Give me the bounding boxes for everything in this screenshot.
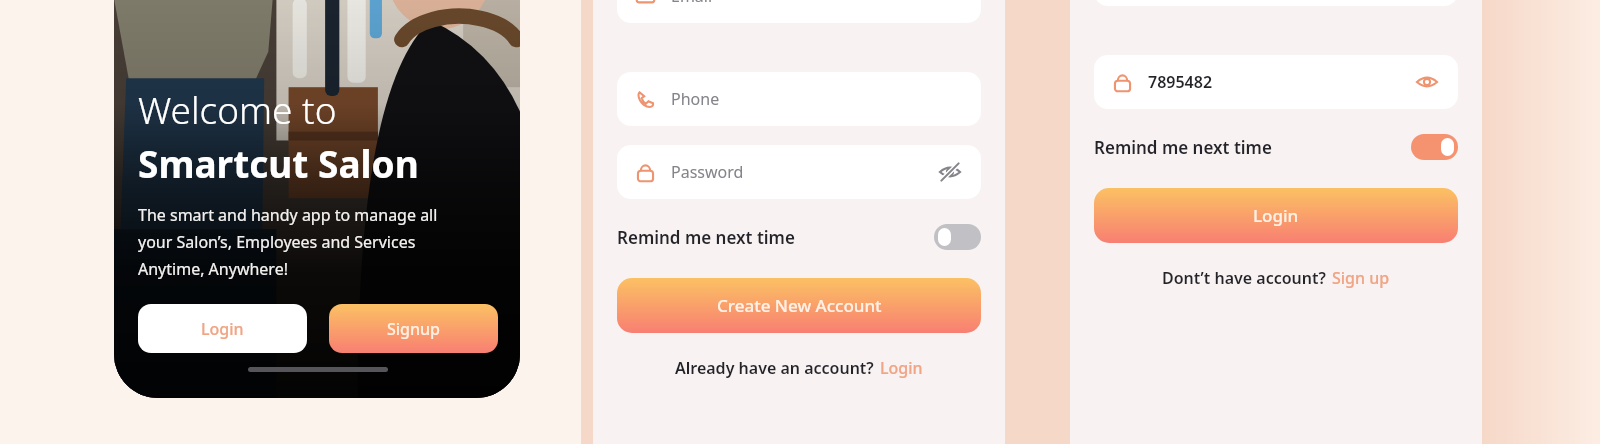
staticText: Remind me next time (617, 226, 795, 249)
button[interactable]: Password (617, 145, 981, 199)
staticText: Smartcut Salon (138, 138, 419, 188)
staticText: Dont’t have account? (1162, 267, 1326, 289)
button[interactable]: Remind me next time toggle (1411, 134, 1458, 160)
staticText: Login (201, 318, 244, 340)
button[interactable]: Phone (617, 72, 981, 126)
staticText: Already have an account? (675, 357, 874, 379)
staticText: Login (1253, 204, 1299, 227)
button[interactable]: Login (138, 304, 307, 353)
staticText: Signup (387, 318, 441, 340)
staticText: Login (880, 357, 923, 379)
staticText: Sign up (1332, 267, 1390, 289)
button[interactable]: Signup (329, 304, 498, 353)
staticText: Remind me next time (1094, 136, 1272, 159)
button[interactable]: 7895482 (1094, 55, 1458, 109)
button[interactable]: Email (617, 0, 981, 23)
button[interactable]: Show password (937, 159, 963, 185)
staticText: Phone (671, 88, 720, 110)
button[interactable]: Create New Account (617, 278, 981, 333)
staticText: Email (671, 0, 713, 7)
staticText: Welcome to (138, 84, 337, 134)
staticText: 7895482 (1148, 71, 1213, 93)
button[interactable]: Login (1094, 188, 1458, 243)
button[interactable]: Login (880, 357, 923, 379)
button[interactable]: Remind me next time toggle (934, 224, 981, 250)
staticText: Password (671, 161, 744, 183)
button[interactable]: Hide password (1414, 69, 1440, 95)
staticText: Create New Account (717, 294, 882, 317)
staticText: The smart and handy app to manage all yo… (138, 204, 438, 280)
button[interactable]: Sign up (1332, 267, 1390, 289)
